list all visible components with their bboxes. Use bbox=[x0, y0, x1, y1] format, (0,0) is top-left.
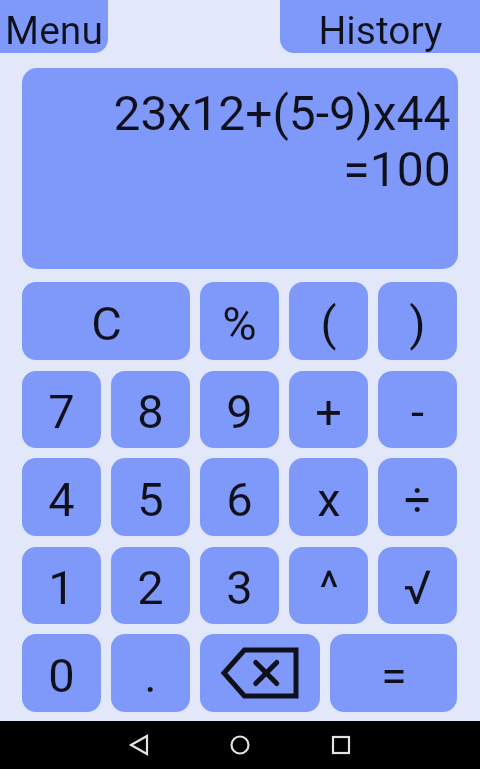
button[interactable]: 23x12+(5-9)x44 bbox=[22, 68, 458, 269]
button[interactable]: = bbox=[330, 634, 457, 712]
button[interactable]: x bbox=[289, 458, 368, 536]
button[interactable]: 0 bbox=[22, 634, 101, 712]
button[interactable]: 2 bbox=[111, 547, 190, 624]
button[interactable]: 4 bbox=[22, 458, 101, 536]
staticText: ( bbox=[320, 296, 337, 351]
button[interactable]: 6 bbox=[200, 458, 279, 536]
staticText: ÷ bbox=[404, 472, 431, 527]
button[interactable] bbox=[200, 634, 320, 712]
button[interactable]: ( bbox=[289, 282, 368, 360]
button[interactable]: History bbox=[280, 0, 480, 53]
button[interactable]: 3 bbox=[200, 547, 279, 624]
staticText: =100 bbox=[343, 141, 451, 197]
staticText: = bbox=[381, 648, 407, 703]
staticText: 2 bbox=[137, 560, 164, 615]
button[interactable]: Menu bbox=[0, 0, 108, 53]
button[interactable]: ^ bbox=[289, 547, 368, 624]
staticText: 5 bbox=[137, 472, 164, 527]
staticText: Menu bbox=[5, 8, 103, 54]
staticText: 9 bbox=[226, 384, 253, 439]
button[interactable]: ) bbox=[378, 282, 457, 360]
staticText: 23x12+(5-9)x44 bbox=[113, 85, 451, 141]
staticText: C bbox=[91, 296, 122, 351]
staticText: 6 bbox=[226, 472, 253, 527]
button[interactable]: + bbox=[289, 371, 368, 448]
button[interactable]: 1 bbox=[22, 547, 101, 624]
button[interactable]: 7 bbox=[22, 371, 101, 448]
staticText: ) bbox=[409, 296, 426, 351]
button[interactable]: . bbox=[111, 634, 190, 712]
staticText: + bbox=[315, 384, 342, 439]
staticText: 3 bbox=[226, 560, 253, 615]
staticText: History bbox=[318, 8, 443, 54]
button[interactable]: C bbox=[22, 282, 190, 360]
staticText: ^ bbox=[319, 560, 339, 615]
staticText: 8 bbox=[137, 384, 164, 439]
staticText: % bbox=[222, 296, 257, 351]
button[interactable]: √ bbox=[378, 547, 457, 624]
button[interactable]: ÷ bbox=[378, 458, 457, 536]
staticText: 0 bbox=[48, 648, 75, 703]
staticText: . bbox=[144, 648, 157, 703]
button[interactable]: % bbox=[200, 282, 279, 360]
button[interactable]: 9 bbox=[200, 371, 279, 448]
staticText: - bbox=[411, 384, 424, 439]
staticText: √ bbox=[403, 560, 432, 615]
staticText: 7 bbox=[48, 384, 75, 439]
staticText: 1 bbox=[48, 560, 75, 615]
button[interactable]: 8 bbox=[111, 371, 190, 448]
button[interactable]: - bbox=[378, 371, 457, 448]
staticText: 4 bbox=[48, 472, 75, 527]
button[interactable]: 5 bbox=[111, 458, 190, 536]
staticText: x bbox=[317, 472, 341, 527]
